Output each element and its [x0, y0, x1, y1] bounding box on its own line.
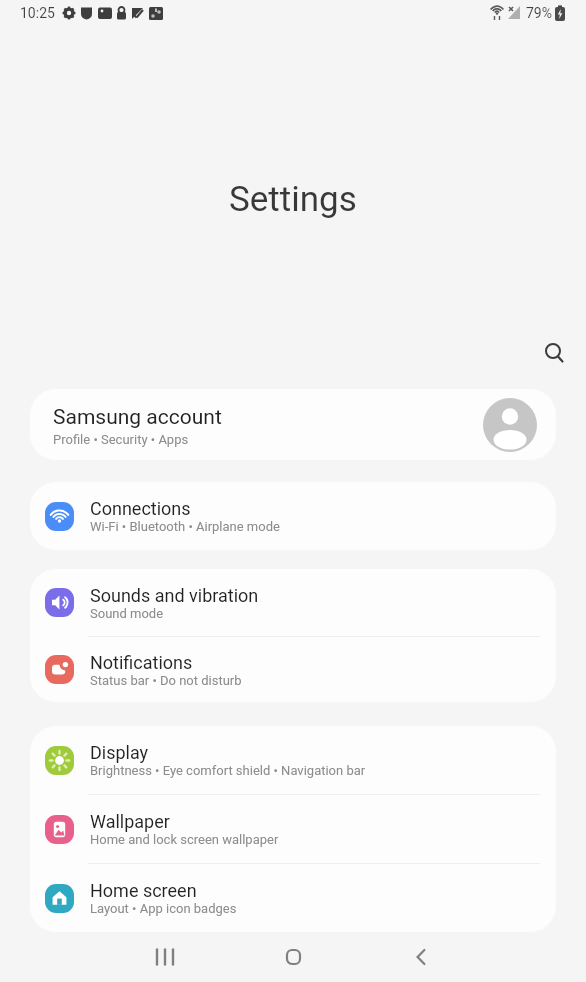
- staticText: Home and lock screen wallpaper: [90, 832, 279, 847]
- staticText: Connections: [90, 498, 191, 519]
- staticText: Status bar • Do not disturb: [90, 673, 242, 688]
- staticText: 10:25: [20, 5, 55, 21]
- staticText: Home screen: [90, 880, 197, 901]
- button[interactable]: Notifications: [30, 637, 556, 702]
- button[interactable]: Connections: [30, 482, 556, 550]
- staticText: Samsung account: [53, 405, 222, 430]
- staticText: 79%: [526, 5, 552, 21]
- staticText: Sounds and vibration: [90, 585, 259, 606]
- staticText: Wallpaper: [90, 811, 170, 832]
- button[interactable]: [271, 935, 315, 979]
- staticText: Notifications: [90, 652, 193, 673]
- button[interactable]: [536, 336, 570, 370]
- button[interactable]: Samsung account: [30, 389, 556, 460]
- staticText: Brightness • Eye comfort shield • Naviga…: [90, 763, 366, 778]
- staticText: Sound mode: [90, 606, 164, 621]
- button[interactable]: Sounds and vibration: [30, 569, 556, 636]
- button[interactable]: [143, 935, 187, 979]
- staticText: Profile • Security • Apps: [53, 432, 189, 447]
- staticText: Settings: [229, 179, 357, 220]
- staticText: Wi-Fi • Bluetooth • Airplane mode: [90, 519, 280, 534]
- staticText: Layout • App icon badges: [90, 901, 237, 916]
- button[interactable]: Wallpaper: [30, 795, 556, 863]
- button[interactable]: Display: [30, 726, 556, 794]
- button[interactable]: Home screen: [30, 864, 556, 932]
- button[interactable]: [399, 935, 443, 979]
- staticText: Display: [90, 742, 149, 763]
